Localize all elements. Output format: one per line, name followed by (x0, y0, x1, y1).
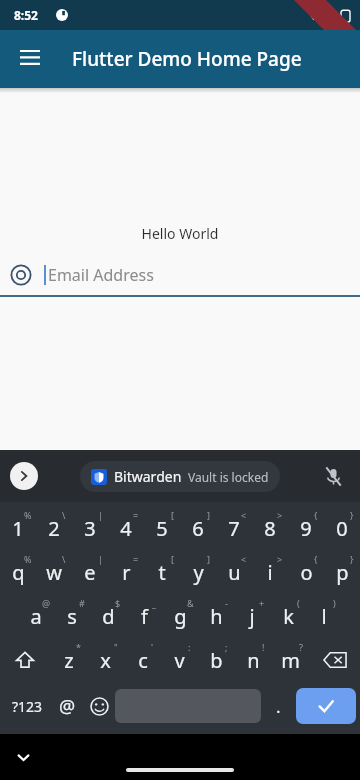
button[interactable]: j (234, 594, 270, 638)
staticText: > (277, 553, 283, 565)
staticText: Bitwarden (114, 467, 182, 486)
staticText: ( (297, 597, 300, 609)
button[interactable]: u (216, 550, 252, 594)
staticText: - (225, 597, 228, 609)
button[interactable]: Shift (0, 638, 50, 682)
staticText: t (158, 559, 166, 586)
button[interactable]: 4 (108, 506, 144, 550)
staticText: f (141, 603, 148, 630)
staticText: = (133, 509, 139, 521)
button[interactable]: ?123 (4, 682, 51, 730)
staticText: r (122, 559, 131, 586)
staticText: a (30, 603, 42, 630)
staticText: ; (225, 641, 228, 653)
staticText: 2 (48, 515, 60, 542)
staticText: : (188, 641, 191, 653)
staticText: q (12, 559, 25, 586)
staticText: @ (42, 597, 51, 609)
staticText: # (79, 597, 85, 609)
staticText: 6 (192, 515, 204, 542)
button[interactable]: h (198, 594, 234, 638)
staticText: s (67, 603, 77, 630)
staticText: Hello World (0, 224, 360, 243)
button[interactable]: Emoji (83, 682, 115, 730)
staticText: 3 (84, 515, 96, 542)
button[interactable]: 8 (252, 506, 288, 550)
button[interactable]: Expand suggestions (10, 462, 38, 490)
staticText: i (267, 559, 273, 586)
staticText: _ (152, 597, 156, 609)
staticText: + (259, 597, 265, 609)
button[interactable]: f (126, 594, 162, 638)
staticText: & (187, 597, 194, 609)
staticText: 1 (12, 515, 24, 542)
staticText: h (210, 603, 223, 630)
button[interactable]: v (161, 638, 198, 682)
button[interactable]: s (54, 594, 90, 638)
staticText: ? (299, 641, 303, 653)
staticText: ' (151, 641, 154, 653)
button[interactable]: e (72, 550, 108, 594)
button[interactable]: 2 (36, 506, 72, 550)
button[interactable]: w (36, 550, 72, 594)
button[interactable]: 5 (144, 506, 180, 550)
staticText: x (100, 647, 111, 674)
staticText: o (300, 559, 313, 586)
staticText: } (350, 553, 354, 565)
button[interactable]: q (0, 550, 36, 594)
staticText: u (228, 559, 241, 586)
staticText: n (247, 647, 260, 674)
staticText: 8 (264, 515, 276, 542)
button[interactable]: . (261, 682, 296, 730)
button[interactable]: a (18, 594, 54, 638)
staticText: ! (262, 641, 265, 653)
button[interactable]: n (235, 638, 272, 682)
button[interactable]: o (288, 550, 324, 594)
button[interactable]: p (324, 550, 360, 594)
button[interactable]: k (270, 594, 306, 638)
button[interactable]: Backspace (309, 638, 360, 682)
staticText: ?123 (12, 697, 43, 716)
button[interactable]: y (180, 550, 216, 594)
button[interactable]: z (50, 638, 87, 682)
staticText: k (283, 603, 294, 630)
button[interactable]: 9 (288, 506, 324, 550)
staticText: \ (62, 509, 66, 521)
staticText: . (276, 695, 281, 718)
staticText: " (114, 641, 118, 653)
staticText: \ (62, 553, 66, 565)
staticText: { (314, 553, 318, 565)
button[interactable]: r (108, 550, 144, 594)
button[interactable]: 3 (72, 506, 108, 550)
button[interactable]: Bitwarden (91, 467, 269, 486)
button[interactable]: m (272, 638, 309, 682)
button[interactable]: @ (51, 682, 83, 730)
button[interactable]: t (144, 550, 180, 594)
button[interactable]: Voice input disabled (318, 461, 348, 491)
button[interactable]: b (198, 638, 235, 682)
staticText: 8:52 (14, 7, 38, 23)
button[interactable]: g (162, 594, 198, 638)
staticText: = (133, 553, 139, 565)
button[interactable]: 0 (324, 506, 360, 550)
button[interactable]: c (124, 638, 161, 682)
staticText: 0 (336, 515, 348, 542)
staticText: c (138, 647, 148, 674)
staticText: Flutter Demo Home Page (72, 46, 302, 72)
button[interactable]: Hide keyboard (8, 742, 38, 772)
button[interactable]: 7 (216, 506, 252, 550)
staticText: 5 (156, 515, 168, 542)
button[interactable]: 1 (0, 506, 36, 550)
button[interactable]: Done (296, 688, 356, 724)
button[interactable]: Email Address (0, 255, 360, 295)
button[interactable]: l (306, 594, 342, 638)
button[interactable]: 6 (180, 506, 216, 550)
button[interactable]: d (90, 594, 126, 638)
button[interactable]: Open navigation menu (8, 37, 52, 81)
staticText: | (98, 553, 103, 565)
button[interactable]: x (87, 638, 124, 682)
button[interactable]: i (252, 550, 288, 594)
staticText: % (24, 553, 32, 565)
staticText: @ (59, 694, 76, 719)
